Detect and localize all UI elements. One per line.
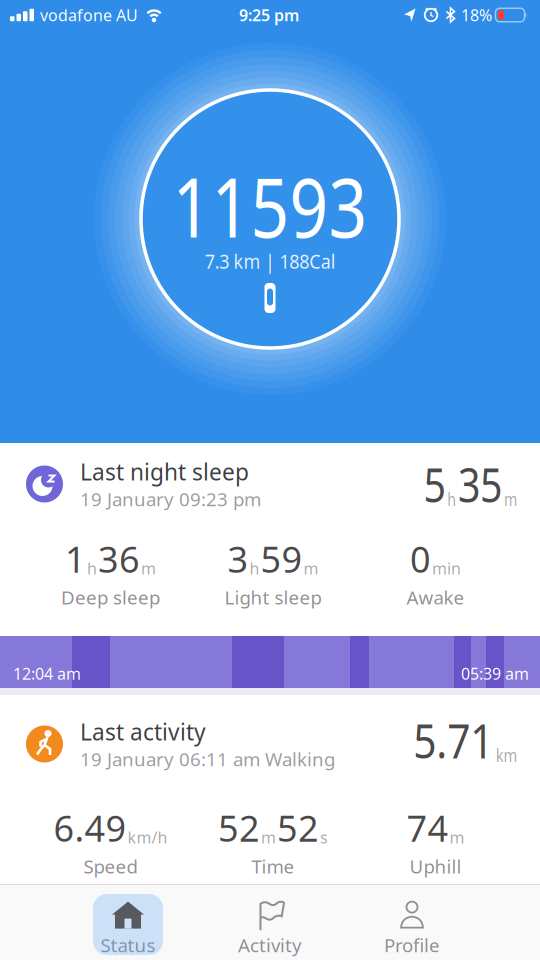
staticText: 05:39 am bbox=[461, 663, 529, 684]
staticText: 6.49 bbox=[53, 804, 126, 852]
staticText: Last night sleep bbox=[80, 457, 249, 487]
staticText: Status bbox=[100, 933, 155, 957]
staticText: 19 January 09:23 pm bbox=[80, 487, 261, 511]
staticText: m bbox=[261, 827, 276, 848]
staticText: Light sleep bbox=[224, 585, 321, 610]
staticText: 19 January 06:11 am Walking bbox=[80, 747, 335, 771]
staticText: 0 bbox=[410, 535, 431, 583]
staticText: h bbox=[87, 558, 97, 579]
staticText: 9:25 pm bbox=[239, 4, 299, 26]
staticText: 36 bbox=[98, 535, 140, 583]
staticText: s bbox=[320, 827, 328, 848]
staticText: 59 bbox=[260, 535, 302, 583]
staticText: Speed bbox=[83, 854, 137, 879]
staticText: m bbox=[141, 558, 156, 579]
staticText: 52 bbox=[277, 804, 319, 852]
staticText: km bbox=[492, 744, 517, 767]
staticText: 74 bbox=[407, 804, 449, 852]
button[interactable]: Last night sleep bbox=[0, 443, 540, 632]
staticText: m bbox=[303, 558, 318, 579]
staticText: m bbox=[450, 827, 465, 848]
staticText: vodafone AU bbox=[40, 4, 138, 26]
staticText: Deep sleep bbox=[61, 585, 160, 610]
staticText: 52 bbox=[218, 804, 260, 852]
staticText: km/h bbox=[127, 827, 167, 848]
staticText: Last activity bbox=[80, 717, 206, 747]
staticText: h bbox=[432, 488, 443, 511]
button[interactable]: Profile bbox=[341, 885, 483, 960]
button[interactable]: Activity bbox=[199, 885, 341, 960]
staticText: min bbox=[432, 558, 461, 579]
staticText: 5 bbox=[403, 452, 430, 516]
staticText: 7.3 km | 188Cal bbox=[197, 248, 342, 274]
staticText: 1 bbox=[65, 535, 86, 583]
staticText: Time bbox=[251, 854, 294, 879]
staticText: Uphill bbox=[410, 854, 462, 879]
staticText: 5.71 bbox=[395, 708, 489, 772]
staticText: 11593 bbox=[152, 152, 387, 260]
staticText: Activity bbox=[238, 933, 302, 957]
staticText: h bbox=[249, 558, 259, 579]
staticText: 12:04 am bbox=[13, 663, 81, 684]
button[interactable]: Last activity bbox=[0, 695, 540, 884]
staticText: Awake bbox=[407, 585, 465, 610]
staticText: 35 bbox=[445, 452, 499, 516]
staticText: 3 bbox=[227, 535, 248, 583]
button[interactable]: Status bbox=[57, 885, 199, 960]
staticText: m bbox=[501, 488, 517, 511]
staticText: 18% bbox=[461, 4, 492, 26]
staticText: Profile bbox=[384, 933, 440, 957]
